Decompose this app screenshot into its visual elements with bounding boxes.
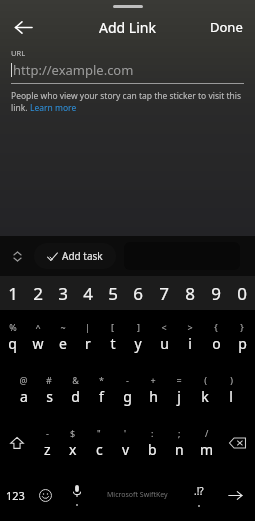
button[interactable]: ( (192, 363, 218, 416)
staticText: r (85, 334, 91, 353)
staticText: - (46, 427, 49, 439)
staticText: - (126, 374, 129, 386)
staticText: | (85, 321, 90, 333)
staticText: y (134, 334, 142, 353)
button[interactable]: 8 (177, 276, 203, 310)
staticText: # (46, 374, 52, 386)
staticText: People who view your story can tap the s… (11, 90, 242, 102)
staticText: s (46, 387, 53, 406)
staticText: z (44, 440, 51, 459)
button[interactable]: / (193, 416, 220, 469)
button[interactable]: # (36, 363, 62, 416)
staticText: p (238, 334, 247, 353)
button[interactable]: : (139, 416, 166, 469)
button[interactable]: Learn more (30, 102, 77, 114)
staticText: a (20, 387, 28, 406)
button[interactable]: ^ (25, 310, 50, 363)
staticText: e (59, 334, 67, 353)
staticText: 2 (33, 282, 43, 305)
button[interactable]: 2 (25, 276, 50, 310)
staticText: < (161, 321, 167, 333)
button[interactable]: [ (100, 310, 125, 363)
button[interactable]: < (151, 310, 177, 363)
staticText: v (122, 440, 130, 459)
button[interactable]: Add task (34, 243, 116, 269)
staticText: Add task (62, 249, 103, 263)
staticText: $ (70, 427, 76, 439)
staticText: 1 (8, 282, 18, 305)
button[interactable]: Done (198, 12, 255, 42)
staticText: ( (204, 374, 207, 386)
button[interactable]: ) (218, 363, 244, 416)
staticText: link. (11, 102, 30, 114)
button[interactable]: = (166, 363, 192, 416)
button[interactable]: ] (125, 310, 151, 363)
button[interactable]: ; (166, 416, 193, 469)
staticText: 123 (6, 488, 25, 503)
button[interactable]: & (62, 363, 88, 416)
button[interactable]: ' (112, 416, 139, 469)
button[interactable]: - (114, 363, 140, 416)
button[interactable]: > (177, 310, 203, 363)
staticText: ^ (35, 321, 41, 333)
button[interactable]: } (229, 310, 255, 363)
staticText: { (214, 321, 218, 333)
button[interactable]: 123 (0, 469, 30, 521)
staticText: 4 (83, 282, 93, 305)
staticText: h (149, 387, 158, 406)
staticText: d (71, 387, 80, 406)
button[interactable]: $ (60, 416, 86, 469)
staticText: w (32, 334, 44, 353)
button[interactable]: Microsoft SwiftKey (92, 469, 182, 521)
button[interactable]: - (34, 416, 60, 469)
button[interactable]: Shift (0, 416, 34, 469)
button[interactable]: Punctuation (182, 469, 216, 521)
staticText: ) (230, 374, 233, 386)
button[interactable]: { (203, 310, 229, 363)
staticText: Microsoft SwiftKey (107, 490, 168, 500)
staticText: > (187, 321, 193, 333)
staticText: m (200, 440, 214, 459)
staticText: b (148, 440, 157, 459)
button[interactable]: Enter (216, 469, 255, 521)
button[interactable]: % (0, 310, 25, 363)
button[interactable]: Backspace (220, 416, 255, 469)
staticText: [ (111, 321, 114, 333)
staticText: % (9, 321, 17, 333)
button[interactable]: Voice input (61, 469, 92, 521)
button[interactable]: * (88, 363, 114, 416)
staticText: 5 (108, 282, 118, 305)
button[interactable]: 3 (50, 276, 75, 310)
staticText: 3 (58, 282, 68, 305)
staticText: http://example.com (13, 61, 134, 79)
staticText: c (96, 440, 103, 459)
button[interactable]: 4 (75, 276, 100, 310)
staticText: = (176, 374, 182, 386)
button[interactable]: ~ (50, 310, 75, 363)
staticText: x (69, 440, 77, 459)
button[interactable]: Expand suggestions (6, 245, 28, 267)
staticText: f (99, 387, 104, 406)
button[interactable]: Emoji (30, 469, 61, 521)
button[interactable]: Back (6, 10, 40, 44)
staticText: & (72, 374, 79, 386)
button[interactable]: 5 (100, 276, 125, 310)
staticText: k (201, 387, 209, 406)
staticText: Done (210, 18, 243, 36)
button[interactable]: 6 (125, 276, 151, 310)
staticText: g (123, 387, 132, 406)
button[interactable]: @ (11, 363, 36, 416)
staticText: 8 (185, 282, 195, 305)
button[interactable]: 1 (0, 276, 25, 310)
staticText: 7 (159, 282, 169, 305)
button[interactable]: 9 (203, 276, 229, 310)
button[interactable]: 7 (151, 276, 177, 310)
button[interactable]: " (86, 416, 112, 469)
staticText: ' (124, 427, 127, 439)
button[interactable]: | (75, 310, 100, 363)
button[interactable]: + (140, 363, 166, 416)
staticText: j (177, 387, 181, 406)
staticText: 0 (237, 282, 247, 305)
button[interactable]: 0 (229, 276, 255, 310)
